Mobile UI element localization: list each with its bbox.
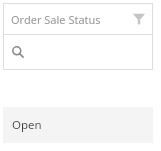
button[interactable]: Open — [3, 107, 153, 143]
staticText: Open — [12, 117, 42, 133]
button[interactable]: Order Sale Status — [3, 4, 153, 34]
button[interactable]: Search — [11, 45, 25, 59]
button[interactable]: Filter — [131, 11, 147, 27]
button[interactable]: Search — [3, 35, 153, 69]
staticText: Order Sale Status — [11, 12, 131, 27]
